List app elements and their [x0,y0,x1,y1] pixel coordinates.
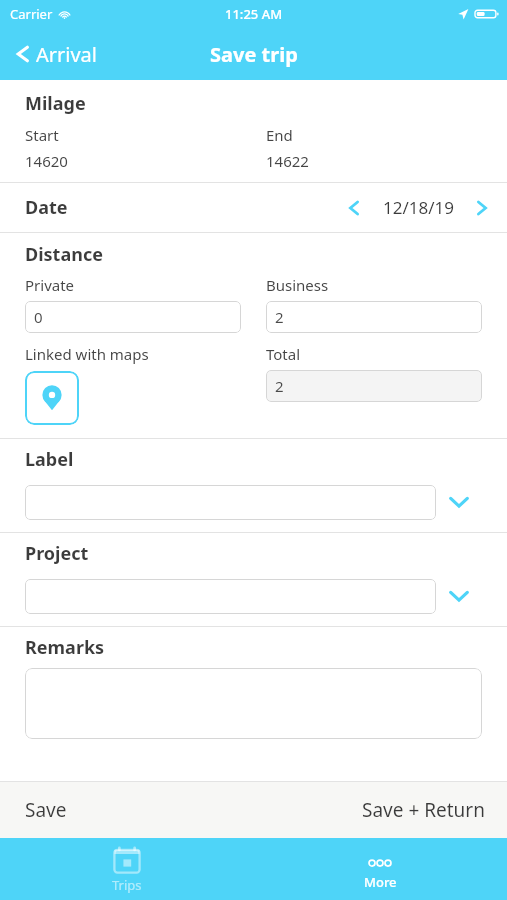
button[interactable]: Date [0,183,507,232]
staticText: 2 [275,307,284,327]
button[interactable]: Choose project [436,573,482,619]
button[interactable]: Next day [462,188,502,228]
staticText: Arrival [36,41,97,68]
staticText: Save [25,797,67,823]
button[interactable]: Trips [0,838,253,900]
staticText: 12/18/19 [383,196,454,219]
button[interactable]: Choose label [436,479,482,525]
staticText: Remarks [25,635,105,660]
staticText: 14620 [25,151,68,171]
staticText: Milage [25,91,86,116]
staticText: Private [25,275,75,295]
button[interactable]: More [253,838,507,900]
button[interactable]: Previous day [334,188,374,228]
staticText: Project [25,541,89,566]
staticText: End [266,125,293,145]
button[interactable]: 2 [266,301,482,333]
staticText: Trips [112,876,142,894]
button[interactable] [25,485,436,520]
staticText: More [364,873,397,891]
button[interactable]: 2 [266,370,482,402]
button[interactable] [25,579,436,614]
staticText: Carrier [10,5,53,23]
staticText: 11:25 AM [225,5,283,23]
button[interactable]: Arrival [0,28,109,80]
button[interactable]: Save + Return [253,782,507,838]
staticText: Business [266,275,329,295]
staticText: Label [25,447,74,472]
staticText: Save + Return [362,797,485,823]
staticText: Save trip [210,41,298,68]
staticText: Date [25,195,68,220]
staticText: 2 [275,376,284,396]
staticText: 14622 [266,151,309,171]
staticText: Linked with maps [25,344,149,364]
staticText: Total [266,344,301,364]
staticText: Start [25,125,59,145]
button[interactable]: Remarks [25,668,482,739]
button[interactable]: Open in maps [25,371,79,425]
staticText: Distance [25,242,103,267]
button[interactable]: Save [0,782,253,838]
button[interactable]: 0 [25,301,241,333]
staticText: 0 [34,307,43,327]
